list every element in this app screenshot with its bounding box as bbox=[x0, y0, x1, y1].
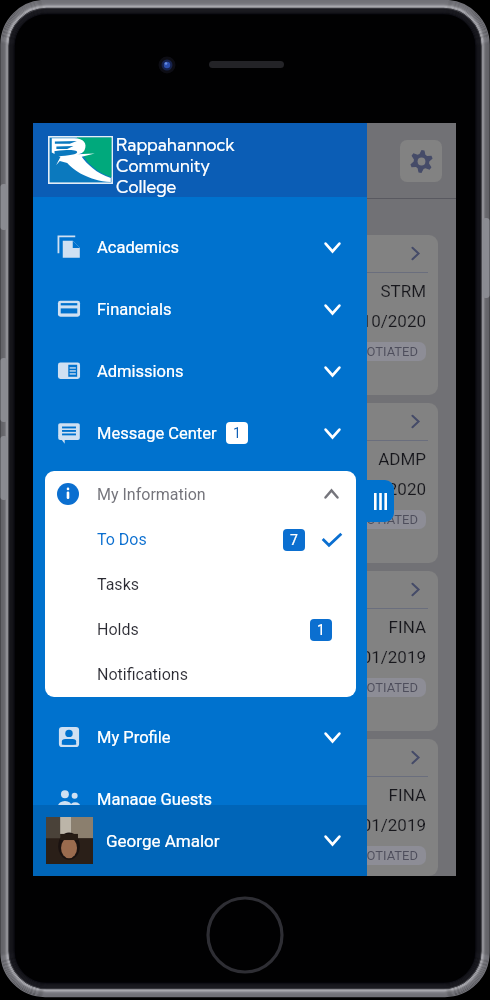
staticText: 09/01/2019 bbox=[43, 647, 426, 667]
button[interactable]: Settings bbox=[400, 140, 442, 182]
button[interactable]: Manage Guests bbox=[33, 768, 367, 830]
button[interactable]: Admissions bbox=[33, 340, 367, 402]
button[interactable]: STRM bbox=[43, 235, 438, 395]
staticText: Academics bbox=[97, 238, 180, 257]
button[interactable]: Academics bbox=[33, 216, 367, 278]
staticText: Rappahannock bbox=[116, 134, 235, 155]
staticText: Message Center bbox=[97, 424, 217, 443]
button[interactable]: Close navigation drawer bbox=[367, 480, 394, 522]
staticText: Admissions bbox=[97, 362, 184, 381]
staticText: Manage Guests bbox=[97, 790, 213, 809]
staticText: FINA bbox=[43, 785, 426, 805]
staticText: STRM bbox=[43, 281, 426, 301]
staticText: My Information bbox=[97, 485, 206, 504]
staticText: 09/01/2019 bbox=[43, 815, 426, 835]
button[interactable]: Message Center bbox=[33, 402, 367, 464]
staticText: 1 bbox=[317, 622, 325, 638]
staticText: 10/10/2020 bbox=[43, 311, 426, 331]
staticText: Community bbox=[116, 155, 210, 176]
button[interactable]: FINA bbox=[43, 571, 438, 731]
button[interactable]: George Amalor bbox=[33, 805, 367, 876]
button[interactable]: Notifications bbox=[45, 652, 356, 697]
button[interactable]: To Dos bbox=[45, 517, 356, 562]
staticText: Financials bbox=[97, 300, 172, 319]
button[interactable]: ADMP bbox=[43, 403, 438, 563]
staticText: To Dos bbox=[97, 530, 147, 549]
staticText: Tasks bbox=[97, 575, 139, 594]
button[interactable]: FINA bbox=[43, 739, 438, 876]
staticText: George Amalor bbox=[106, 831, 220, 851]
button[interactable]: Tasks bbox=[45, 562, 356, 607]
staticText: ADMP bbox=[43, 449, 426, 469]
staticText: NEGOTIATED bbox=[341, 344, 419, 359]
button[interactable]: My Information bbox=[45, 471, 356, 517]
button[interactable]: My Profile bbox=[33, 706, 367, 768]
staticText: 1 bbox=[233, 425, 241, 441]
staticText: 7 bbox=[290, 532, 298, 548]
staticText: FINA bbox=[43, 617, 426, 637]
staticText: Holds bbox=[97, 620, 139, 639]
staticText: NEGOTIATED bbox=[341, 680, 419, 695]
staticText: My Profile bbox=[97, 728, 171, 747]
button[interactable]: Holds bbox=[45, 607, 356, 652]
staticText: NEGOTIATED bbox=[341, 512, 419, 527]
button[interactable]: Financials bbox=[33, 278, 367, 340]
staticText: College bbox=[116, 176, 177, 197]
staticText: NEGOTIATED bbox=[341, 848, 419, 863]
staticText: Notifications bbox=[97, 665, 188, 684]
staticText: 08/2020 bbox=[43, 479, 426, 499]
